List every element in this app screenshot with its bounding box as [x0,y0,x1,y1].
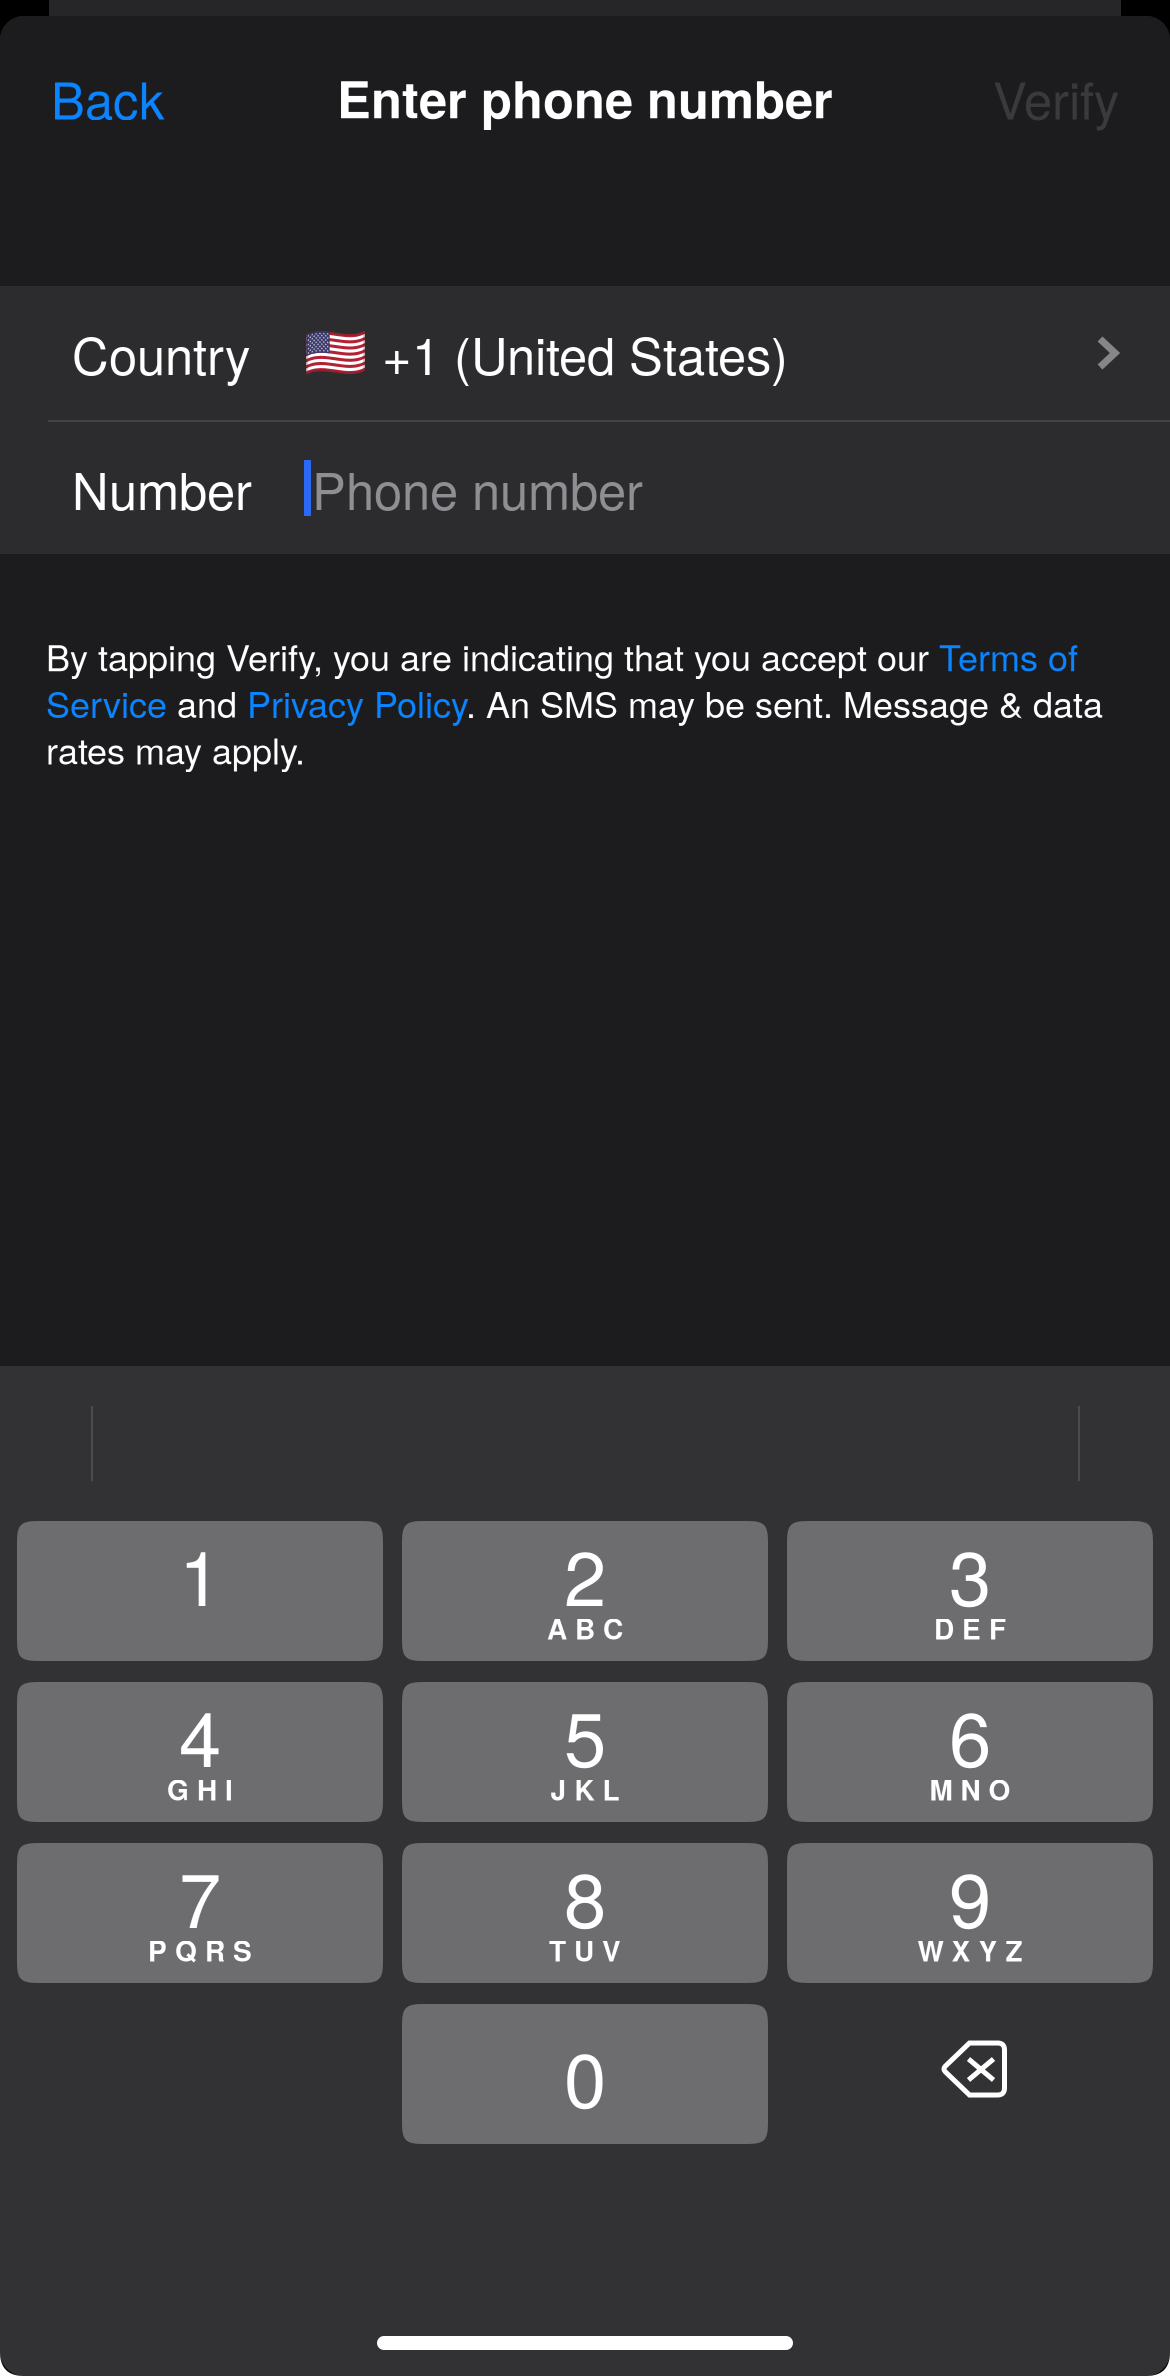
staticText: 2 [564,1519,606,1628]
staticText: 🇺🇸 [304,323,367,383]
staticText: A B C [547,1608,623,1648]
button[interactable]: Delete [787,2004,1153,2144]
button[interactable]: 5 [402,1682,768,1822]
staticText: Phone number [312,452,643,524]
staticText: P Q R S [148,1930,252,1970]
staticText: W X Y Z [917,1930,1022,1970]
staticText: J K L [550,1769,619,1809]
button[interactable]: 2 [402,1521,768,1661]
staticText: +1 (United States) [382,317,788,389]
staticText: M N O [929,1769,1010,1809]
staticText: 6 [949,1680,991,1789]
button[interactable]: Verify [909,16,1170,179]
staticText: 7 [179,1841,221,1950]
button[interactable]: 7 [17,1843,383,1983]
staticText: D E F [934,1608,1006,1648]
button[interactable]: Back [0,16,261,179]
staticText: 5 [564,1680,606,1789]
staticText: By tapping Verify, you are indicating th… [46,630,1103,775]
button[interactable]: Country [0,286,1170,420]
button[interactable]: 6 [787,1682,1153,1822]
staticText: Back [51,61,164,134]
button[interactable]: 9 [787,1843,1153,1983]
button[interactable]: 0 [402,2004,768,2144]
staticText: G H I [167,1769,233,1809]
staticText: 1 [179,1519,221,1628]
button[interactable]: 3 [787,1521,1153,1661]
button[interactable]: 8 [402,1843,768,1983]
button[interactable]: 4 [17,1682,383,1822]
staticText: 9 [949,1841,991,1950]
staticText: T U V [549,1930,621,1970]
staticText: 4 [179,1680,221,1789]
staticText: 3 [949,1519,991,1628]
staticText: Enter phone number [337,61,833,134]
staticText: 8 [564,1841,606,1950]
button[interactable]: 1 [17,1521,383,1661]
staticText: Country [72,317,250,389]
staticText: 0 [564,2021,606,2130]
staticText: Verify [993,61,1119,134]
staticText: Number [72,452,252,524]
